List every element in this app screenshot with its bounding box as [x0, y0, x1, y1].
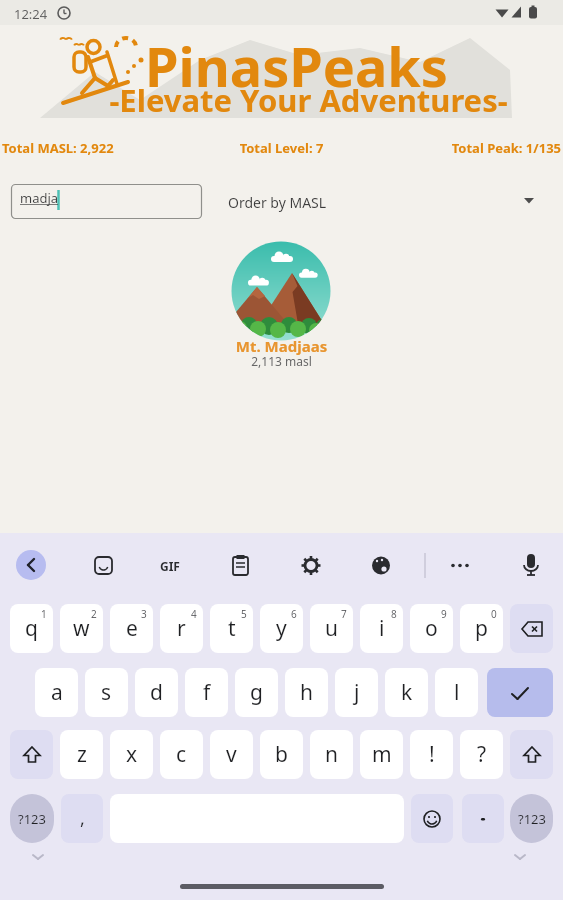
staticText: ?123 [18, 810, 46, 828]
staticText: s [101, 678, 112, 707]
staticText: PinasPeaks [145, 29, 448, 103]
button[interactable] [10, 730, 53, 779]
button[interactable]: madja [11, 184, 202, 219]
staticText: 0 [491, 607, 497, 621]
button[interactable]: o [410, 604, 453, 653]
staticText: e [126, 614, 138, 643]
button[interactable]: k [385, 668, 428, 717]
staticText: i [379, 614, 385, 643]
staticText: n [325, 740, 338, 769]
staticText: b [275, 740, 288, 769]
button[interactable] [83, 544, 123, 584]
button[interactable]: j [335, 668, 378, 717]
button[interactable]: r [160, 604, 203, 653]
staticText: Total MASL: 2,922 [2, 139, 114, 157]
staticText: m [372, 740, 392, 769]
staticText: t [228, 614, 236, 643]
staticText: 1 [41, 607, 47, 621]
staticText: g [250, 678, 263, 707]
button[interactable]: x [110, 730, 153, 779]
button[interactable]: z [60, 730, 103, 779]
staticText: 3 [141, 607, 147, 621]
button[interactable]: , [61, 794, 103, 843]
staticText: z [77, 740, 87, 769]
staticText: Total Peak: 1/135 [448, 139, 561, 157]
button[interactable]: f [185, 668, 228, 717]
staticText: 5 [241, 607, 247, 621]
staticText: GIF [160, 558, 180, 574]
button[interactable]: ?123 [10, 794, 54, 843]
button[interactable]: a [35, 668, 78, 717]
button[interactable] [291, 544, 331, 584]
staticText: , [80, 806, 85, 831]
button[interactable]: m [360, 730, 403, 779]
button[interactable]: v [210, 730, 253, 779]
button[interactable]: h [285, 668, 328, 717]
staticText: j [354, 678, 360, 707]
staticText: v [226, 740, 237, 769]
button[interactable]: y [260, 604, 303, 653]
staticText: q [25, 614, 38, 643]
button[interactable] [411, 794, 453, 843]
staticText: x [126, 740, 138, 769]
button[interactable]: n [310, 730, 353, 779]
staticText: madja [20, 189, 59, 207]
button[interactable]: t [210, 604, 253, 653]
button[interactable]: w [60, 604, 103, 653]
staticText: 12:24 [14, 5, 48, 23]
staticText: y [276, 614, 287, 643]
staticText: p [475, 614, 488, 643]
staticText: ! [429, 740, 435, 769]
staticText: 2,113 masl [231, 353, 332, 369]
staticText: 9 [441, 607, 447, 621]
staticText: 8 [391, 607, 397, 621]
button[interactable]: b [260, 730, 303, 779]
staticText: 2 [91, 607, 97, 621]
button[interactable] [510, 604, 553, 653]
button[interactable]: p [460, 604, 503, 653]
button[interactable] [511, 544, 551, 584]
button[interactable]: c [160, 730, 203, 779]
button[interactable] [220, 544, 260, 584]
staticText: Mt. Madjaas [231, 336, 332, 356]
staticText: k [401, 678, 413, 707]
staticText: r [177, 614, 186, 643]
button[interactable]: u [310, 604, 353, 653]
button[interactable]: Mt. Madjaas [231, 240, 332, 372]
button[interactable]: q [10, 604, 53, 653]
button[interactable]: ! [410, 730, 453, 779]
button[interactable]: s [85, 668, 128, 717]
button[interactable]: ? [460, 730, 503, 779]
button[interactable]: d [135, 668, 178, 717]
button[interactable] [462, 794, 504, 843]
staticText: ? [477, 740, 487, 769]
button[interactable]: Order by MASL [214, 185, 554, 218]
button[interactable] [361, 544, 401, 584]
staticText: 6 [291, 607, 297, 621]
staticText: o [425, 614, 438, 643]
staticText: -Elevate Your Adventures- [27, 79, 563, 121]
button[interactable]: e [110, 604, 153, 653]
staticText: ?123 [518, 810, 546, 828]
staticText: d [150, 678, 163, 707]
staticText: h [300, 678, 313, 707]
button[interactable]: g [235, 668, 278, 717]
button[interactable]: i [360, 604, 403, 653]
button[interactable]: l [435, 668, 478, 717]
button[interactable] [151, 544, 191, 584]
staticText: 4 [191, 607, 197, 621]
staticText: 7 [341, 607, 347, 621]
staticText: a [51, 678, 63, 707]
button[interactable] [510, 730, 553, 779]
staticText: Order by MASL [228, 193, 327, 212]
button[interactable] [440, 544, 480, 584]
button[interactable] [16, 550, 46, 580]
button[interactable] [487, 668, 553, 717]
staticText: Total Level: 7 [0, 139, 563, 157]
staticText: f [203, 678, 211, 707]
staticText: u [325, 614, 338, 643]
button[interactable]: ?123 [510, 794, 553, 843]
staticText: l [454, 678, 460, 707]
staticText: c [176, 740, 187, 769]
